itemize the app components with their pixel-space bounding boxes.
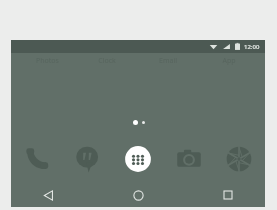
button[interactable]: All apps xyxy=(120,141,156,177)
button[interactable]: Phone xyxy=(19,141,55,177)
button[interactable]: Home xyxy=(125,183,151,207)
button[interactable]: Camera xyxy=(171,141,207,177)
button[interactable]: Recent apps xyxy=(215,183,241,207)
button[interactable]: Back xyxy=(35,183,61,207)
button[interactable]: Hangouts xyxy=(70,141,106,177)
staticText: 12:00 xyxy=(244,43,260,51)
button[interactable] xyxy=(142,121,145,124)
button[interactable] xyxy=(133,120,138,125)
button[interactable]: Photos xyxy=(221,141,257,177)
